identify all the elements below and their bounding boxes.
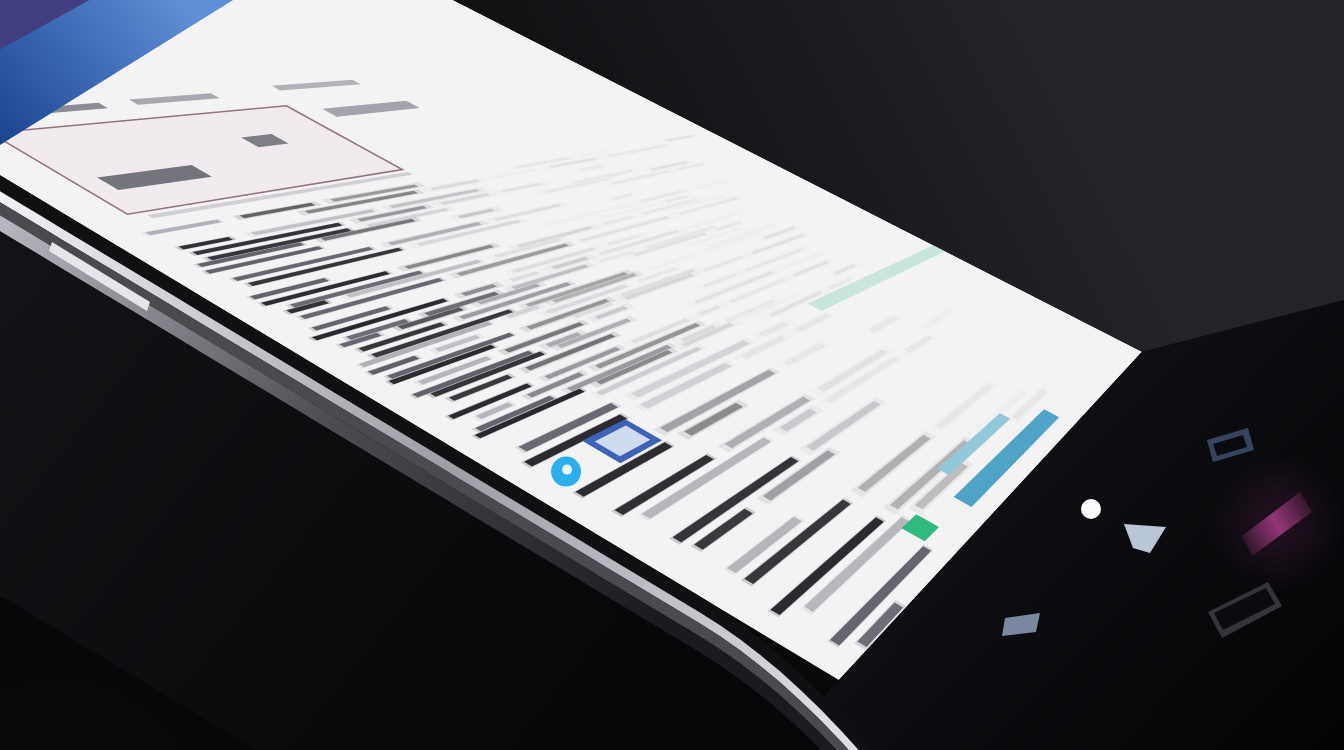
button[interactable] <box>0 0 1344 750</box>
